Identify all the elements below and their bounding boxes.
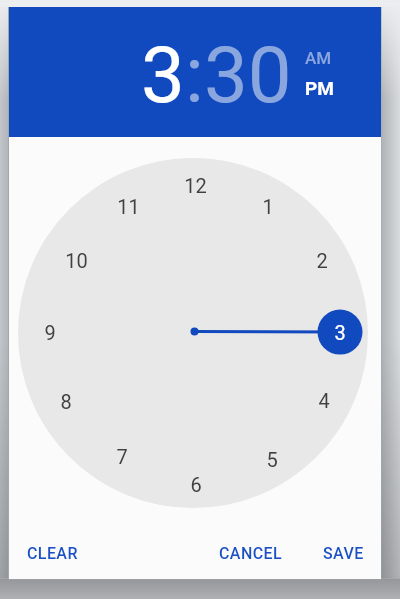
staticText: 7 <box>116 445 128 468</box>
button[interactable]: 9 <box>34 320 66 344</box>
button[interactable]: 3 <box>324 320 356 344</box>
staticText: 8 <box>60 390 72 413</box>
staticText: 4 <box>318 389 330 412</box>
button[interactable]: AM <box>305 48 332 68</box>
staticText: CLEAR <box>27 544 78 563</box>
button[interactable]: 30 <box>204 30 292 121</box>
staticText: 9 <box>44 321 56 344</box>
button[interactable]: 10 <box>60 248 92 272</box>
button[interactable]: 5 <box>256 447 288 471</box>
button[interactable]: 3 <box>141 30 185 121</box>
button[interactable]: SAVE <box>315 532 372 575</box>
staticText: 10 <box>65 249 88 272</box>
button[interactable]: PM <box>305 77 334 99</box>
staticText: 5 <box>266 448 278 471</box>
staticText: 3 <box>334 321 346 344</box>
button[interactable]: CANCEL <box>211 532 291 575</box>
button[interactable]: 8 <box>50 389 82 413</box>
staticText: 6 <box>190 473 202 496</box>
staticText: SAVE <box>323 544 364 563</box>
button[interactable]: 6 <box>180 472 212 496</box>
button[interactable]: 4 <box>308 388 340 412</box>
button[interactable]: 2 <box>306 248 338 272</box>
staticText: 11 <box>117 195 140 218</box>
staticText: 2 <box>316 249 328 272</box>
staticText: : <box>185 30 204 121</box>
button[interactable]: CLEAR <box>19 532 86 575</box>
button[interactable]: 7 <box>106 444 138 468</box>
staticText: 12 <box>184 174 207 197</box>
staticText: CANCEL <box>219 544 283 563</box>
button[interactable]: 11 <box>112 194 144 218</box>
button[interactable]: 1 <box>252 194 284 218</box>
staticText: 1 <box>262 195 274 218</box>
button[interactable]: 12 <box>179 173 211 197</box>
